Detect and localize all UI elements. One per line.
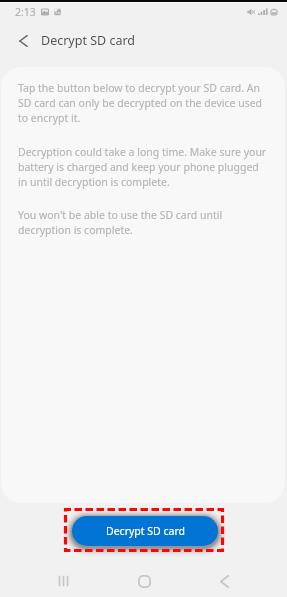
button[interactable]: Decrypt SD card [72,516,218,546]
staticText: Tap the button below to decrypt your SD … [18,81,270,125]
button[interactable]: Recents [45,565,81,597]
staticText: 2:13 [15,5,36,19]
staticText: Decrypt SD card [41,32,136,49]
button[interactable]: Home [126,565,162,597]
staticText: Decrypt SD card [106,524,185,538]
button[interactable]: Back [206,565,242,597]
staticText: You won't be able to use the SD card unt… [18,208,270,237]
button[interactable]: Navigate up [11,29,35,53]
staticText: Decryption could take a long time. Make … [18,145,270,189]
